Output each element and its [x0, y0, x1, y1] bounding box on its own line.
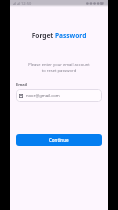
staticText: Continue: [49, 137, 69, 143]
button[interactable]: Continue: [16, 134, 102, 146]
staticText: Please enter your email account to reset…: [10, 62, 108, 73]
staticText: 12:50: [21, 1, 32, 6]
staticText: Email: [16, 82, 28, 88]
staticText: Forget Password: [10, 31, 108, 40]
staticText: noor@gmail.com: [26, 93, 60, 99]
button[interactable]: noor@gmail.com: [16, 89, 102, 102]
